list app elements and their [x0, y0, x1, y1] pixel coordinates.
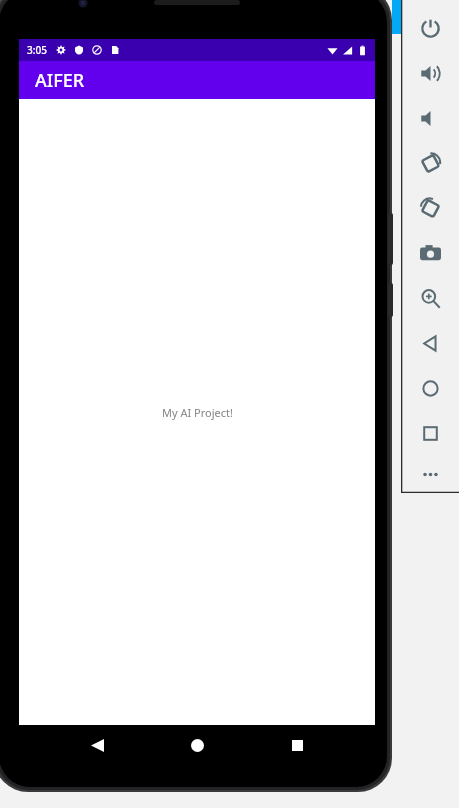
button[interactable]: Back [75, 725, 119, 765]
button[interactable]: Power [402, 6, 458, 51]
staticText: My AI Project! [162, 405, 233, 420]
button[interactable]: Rotate left [402, 141, 458, 186]
button[interactable]: Home [175, 725, 219, 765]
button[interactable]: AIFER [19, 61, 375, 99]
button[interactable]: Volume up [402, 51, 458, 96]
button[interactable]: Home [402, 366, 458, 411]
button[interactable]: Volume down [402, 96, 458, 141]
button[interactable]: Recent apps [275, 725, 319, 765]
button[interactable]: Overview [402, 411, 458, 456]
button[interactable]: Take screenshot [402, 231, 458, 276]
button[interactable]: Back [402, 321, 458, 366]
staticText: AIFER [35, 68, 85, 93]
button[interactable]: Rotate right [402, 186, 458, 231]
staticText: 3:05 [27, 43, 47, 57]
button[interactable]: Zoom [402, 276, 458, 321]
button[interactable]: More [402, 456, 458, 493]
